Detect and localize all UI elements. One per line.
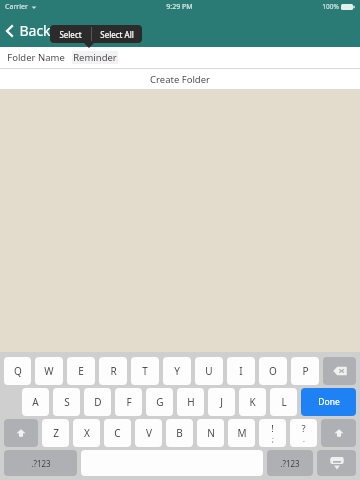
staticText: E (78, 364, 84, 378)
button[interactable]: Z (42, 419, 69, 447)
staticText: 100% (322, 2, 339, 11)
staticText: J (220, 395, 223, 409)
staticText: R (110, 364, 117, 378)
button[interactable]: ! (259, 419, 286, 447)
button[interactable]: K (239, 388, 266, 416)
button[interactable]: Select All (92, 25, 142, 43)
staticText: 9:29 PM (166, 2, 193, 12)
button[interactable]: Y (163, 357, 191, 385)
button[interactable]: U (195, 357, 223, 385)
staticText: P (302, 364, 309, 378)
staticText: A (32, 395, 39, 409)
button[interactable]: D (84, 388, 111, 416)
button[interactable]: .?123 (267, 450, 313, 476)
staticText: W (44, 364, 54, 378)
staticText: .?123 (31, 458, 51, 469)
staticText: T (142, 364, 148, 378)
button[interactable]: C (104, 419, 131, 447)
button[interactable]: L (270, 388, 297, 416)
staticText: Reminder (73, 51, 117, 64)
button[interactable]: B (166, 419, 193, 447)
staticText: .?123 (280, 458, 300, 469)
staticText: N (207, 426, 215, 440)
staticText: V (146, 426, 152, 440)
staticText: U (205, 364, 213, 378)
button[interactable]: Hide keyboard (317, 450, 356, 476)
staticText: Folder Name (7, 51, 65, 64)
staticText: Select All (100, 29, 134, 40)
staticText: G (156, 395, 164, 409)
staticText: D (94, 395, 102, 409)
button[interactable]: X (73, 419, 100, 447)
button[interactable]: T (131, 357, 159, 385)
button[interactable]: E (67, 357, 95, 385)
staticText: ? (301, 422, 306, 435)
staticText: L (281, 395, 287, 409)
staticText: Carrier (5, 2, 28, 12)
staticText: Create Folder (150, 73, 210, 86)
button[interactable]: P (291, 357, 319, 385)
staticText: B (176, 426, 183, 440)
staticText: Select (59, 29, 82, 40)
staticText: X (84, 426, 90, 440)
button[interactable]: Reminder (72, 51, 118, 64)
staticText: O (269, 364, 277, 378)
button[interactable]: W (35, 357, 63, 385)
button[interactable]: Backspace (323, 357, 356, 385)
staticText: K (249, 395, 256, 409)
button[interactable]: G (146, 388, 173, 416)
staticText: . (303, 435, 305, 445)
button[interactable]: A (22, 388, 49, 416)
button[interactable]: .?123 (4, 450, 77, 476)
button[interactable]: F (115, 388, 142, 416)
button[interactable]: Q (4, 357, 31, 385)
staticText: F (126, 395, 132, 409)
button[interactable]: H (177, 388, 204, 416)
button[interactable]: Shift (321, 419, 356, 447)
button[interactable]: Back (0, 17, 61, 44)
staticText: ; (272, 435, 274, 445)
button[interactable]: ? (290, 419, 317, 447)
button[interactable]: Select (50, 25, 91, 43)
staticText: Back (19, 21, 51, 40)
staticText: Done (318, 396, 340, 408)
button[interactable]: Create Folder (0, 69, 360, 89)
button[interactable]: M (228, 419, 255, 447)
button[interactable]: S (53, 388, 80, 416)
staticText: I (239, 364, 243, 378)
staticText: Z (53, 426, 59, 440)
staticText: M (237, 426, 247, 440)
button[interactable]: J (208, 388, 235, 416)
button[interactable]: N (197, 419, 224, 447)
button[interactable]: R (99, 357, 127, 385)
staticText: S (64, 395, 70, 409)
staticText: ! (271, 422, 274, 435)
button[interactable]: V (135, 419, 162, 447)
button[interactable]: Shift (4, 419, 38, 447)
staticText: Q (14, 364, 22, 378)
button[interactable]: O (259, 357, 287, 385)
staticText: H (187, 395, 195, 409)
button[interactable]: Done (301, 388, 356, 416)
staticText: Y (174, 364, 180, 378)
staticText: C (114, 426, 121, 440)
button[interactable]: I (227, 357, 255, 385)
